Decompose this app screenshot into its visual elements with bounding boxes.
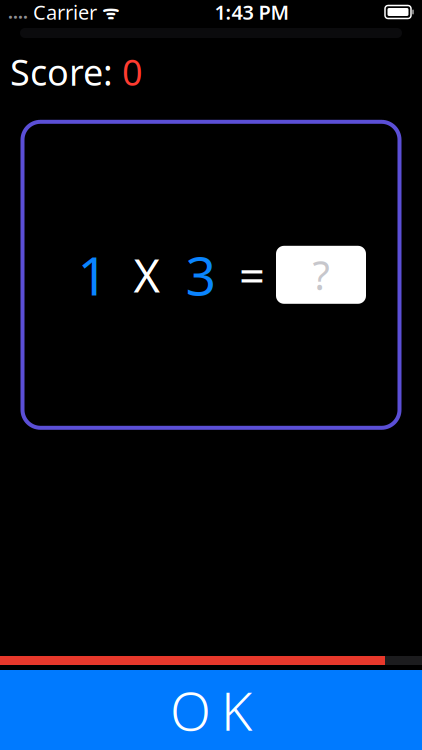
- staticText: =: [239, 245, 265, 305]
- staticText: 1:43 PM: [214, 0, 289, 25]
- staticText: Carrier: [28, 0, 97, 25]
- staticText: ᯤ: [97, 0, 119, 24]
- staticText: 3: [185, 239, 216, 310]
- staticText: X: [133, 245, 160, 305]
- staticText: ....: [8, 0, 28, 23]
- staticText: K: [221, 675, 252, 745]
- staticText: 0: [122, 48, 143, 96]
- staticText: 1: [77, 239, 108, 310]
- staticText: ?: [312, 248, 329, 301]
- staticText: Score:: [10, 48, 122, 96]
- button[interactable]: O: [0, 670, 422, 750]
- staticText: O: [170, 675, 211, 745]
